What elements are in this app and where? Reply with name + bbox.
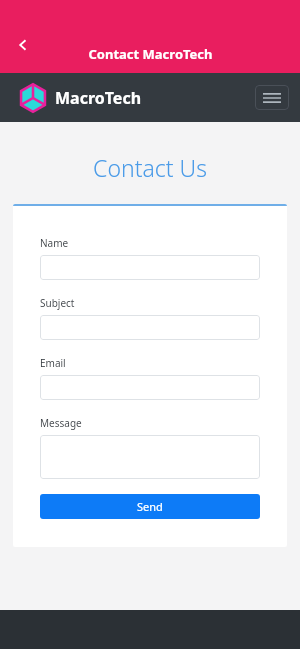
staticText: MacroTech xyxy=(55,87,142,109)
staticText: Subject xyxy=(40,296,75,310)
button[interactable]: Back xyxy=(6,28,40,62)
button[interactable] xyxy=(40,375,260,400)
button[interactable] xyxy=(40,255,260,280)
button[interactable]: MacroTech xyxy=(18,83,142,113)
staticText: Contact Us xyxy=(0,152,300,183)
button[interactable] xyxy=(40,435,260,479)
button[interactable] xyxy=(40,315,260,340)
staticText: Send xyxy=(137,499,163,514)
staticText: Contact MacroTech xyxy=(88,45,213,63)
staticText: Email xyxy=(40,356,66,370)
button[interactable]: Send xyxy=(40,494,260,519)
staticText: Message xyxy=(40,416,82,430)
staticText: Name xyxy=(40,236,69,250)
button[interactable]: Menu xyxy=(255,85,289,110)
